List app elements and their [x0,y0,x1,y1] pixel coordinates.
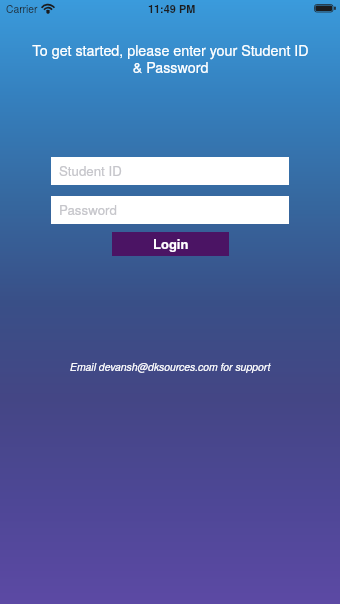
button[interactable]: Login [112,232,229,256]
button[interactable]: Email devansh@dksources.com for support [70,359,271,374]
staticText: Password [59,200,117,219]
staticText: 11:49 PM [148,1,196,17]
other: Battery full [314,4,336,16]
other: Wi-Fi signal strength [42,4,54,13]
button[interactable]: Student ID [51,157,289,185]
staticText: Login [153,234,189,253]
button[interactable]: Password [51,196,289,224]
staticText: To get started, please enter your Studen… [32,40,309,77]
staticText: Carrier [6,1,38,16]
staticText: Student ID [59,161,122,180]
